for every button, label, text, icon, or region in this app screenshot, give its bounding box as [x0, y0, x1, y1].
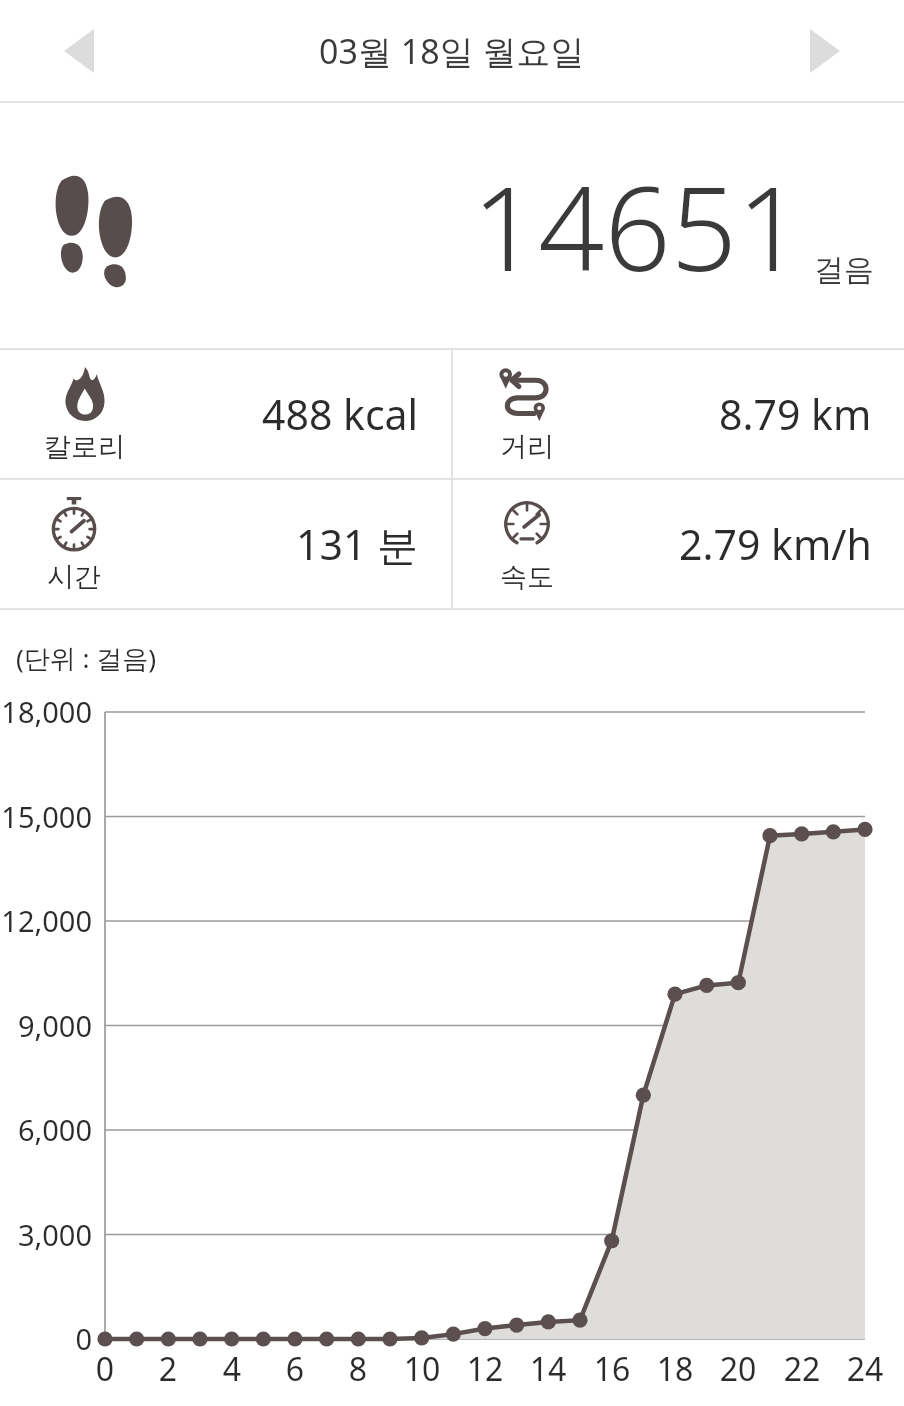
- staticText: 18: [650, 1347, 700, 1391]
- staticText: 6: [270, 1347, 320, 1391]
- staticText: 18,000: [0, 692, 92, 731]
- other: Time: [44, 494, 104, 554]
- staticText: 24: [840, 1347, 890, 1391]
- button[interactable]: Distance: [453, 350, 904, 478]
- staticText: 시간: [47, 560, 101, 594]
- staticText: (단위 : 걸음): [16, 640, 157, 676]
- staticText: 4: [207, 1347, 257, 1391]
- staticText: 2.79 km/h: [679, 516, 872, 572]
- staticText: 03월 18일 월요일: [319, 28, 585, 74]
- button[interactable]: Speed: [453, 480, 904, 608]
- staticText: 9,000: [0, 1006, 92, 1045]
- staticText: 2: [143, 1347, 193, 1391]
- button[interactable]: Time: [0, 480, 451, 608]
- staticText: 걸음: [814, 251, 874, 289]
- button[interactable]: Previous day: [36, 8, 122, 94]
- staticText: 칼로리: [44, 430, 125, 464]
- staticText: 14651: [472, 147, 804, 305]
- staticText: 15,000: [0, 797, 92, 836]
- staticText: 131 분: [296, 516, 419, 572]
- other: Calories: [55, 364, 115, 424]
- staticText: 거리: [500, 430, 554, 464]
- staticText: 속도: [500, 560, 554, 594]
- staticText: 6,000: [0, 1110, 92, 1149]
- staticText: 488 kcal: [262, 386, 419, 442]
- button[interactable]: Calories: [0, 350, 451, 478]
- staticText: 12,000: [0, 901, 92, 940]
- staticText: 8.79 km: [719, 386, 872, 442]
- other: Steps: [46, 166, 144, 286]
- staticText: 0: [0, 1319, 92, 1358]
- button[interactable]: Steps: [0, 103, 904, 348]
- staticText: 10: [397, 1347, 447, 1391]
- staticText: 8: [333, 1347, 383, 1391]
- staticText: 3,000: [0, 1215, 92, 1254]
- staticText: 22: [777, 1347, 827, 1391]
- button[interactable]: Next day: [782, 8, 868, 94]
- staticText: 0: [80, 1347, 130, 1391]
- staticText: 20: [713, 1347, 763, 1391]
- staticText: 12: [460, 1347, 510, 1391]
- staticText: 14: [523, 1347, 573, 1391]
- other: Distance: [497, 364, 557, 424]
- other: Speed: [497, 494, 557, 554]
- staticText: 16: [587, 1347, 637, 1391]
